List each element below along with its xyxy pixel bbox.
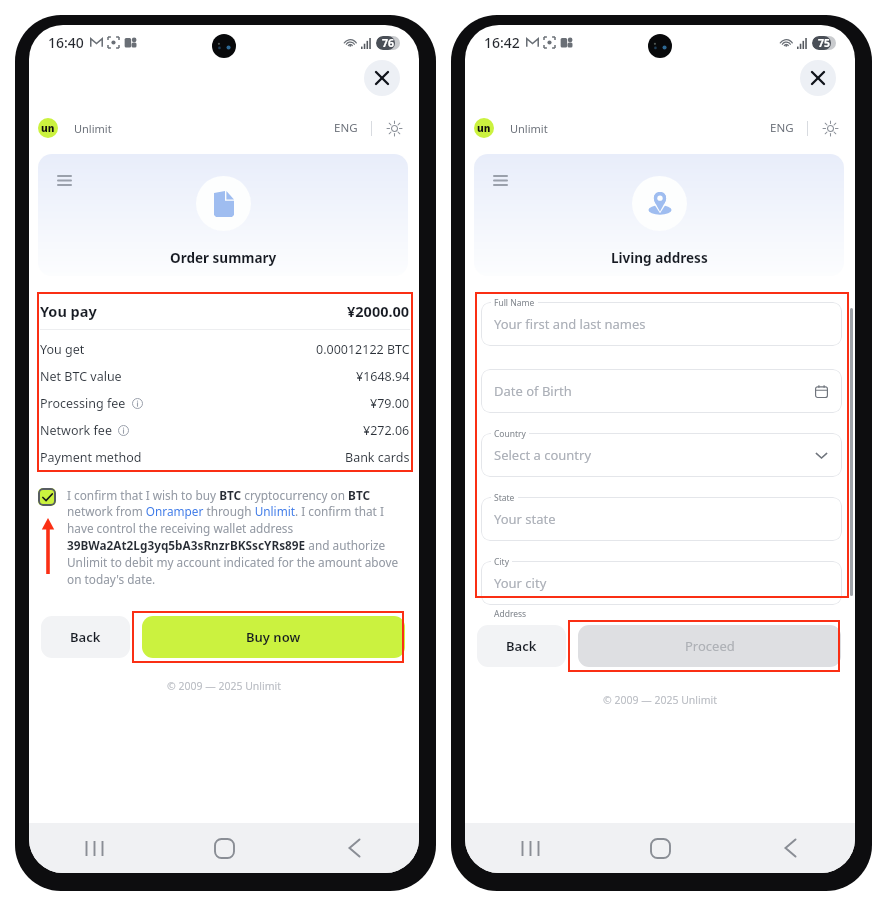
button[interactable]: Close <box>364 60 400 96</box>
staticText: un <box>477 121 491 135</box>
staticText: Back <box>506 637 537 655</box>
button[interactable]: Theme <box>819 117 841 139</box>
staticText: Select a country <box>494 446 592 464</box>
button[interactable]: Back <box>725 823 855 873</box>
staticText: Full Name <box>494 297 535 309</box>
staticText: Living address <box>611 249 708 267</box>
button[interactable]: Close <box>800 60 836 96</box>
staticText: 16:40 <box>48 33 84 52</box>
staticText: ENG <box>770 120 794 136</box>
staticText: Unlimit <box>510 121 548 136</box>
staticText: Unlimit <box>74 121 112 136</box>
staticText: Date of Birth <box>494 382 572 400</box>
button[interactable]: Back <box>477 625 566 667</box>
staticText: Back <box>70 628 101 646</box>
staticText: Address <box>494 608 527 620</box>
staticText: State <box>494 492 515 504</box>
staticText: I confirm that I wish to buy BTC cryptoc… <box>67 487 404 588</box>
staticText: un <box>41 121 55 135</box>
staticText: © 2009 — 2025 Unlimit <box>29 679 419 693</box>
staticText: 16:42 <box>484 33 520 52</box>
staticText: Net BTC value <box>40 368 122 385</box>
button[interactable]: Back <box>289 823 419 873</box>
button[interactable]: Buy now <box>142 616 405 658</box>
button[interactable]: Proceed <box>578 625 841 667</box>
staticText: Network fee <box>40 422 112 439</box>
button[interactable] <box>481 561 842 605</box>
staticText: Your state <box>494 510 556 528</box>
button[interactable] <box>481 497 842 541</box>
staticText: ENG <box>334 120 358 136</box>
button[interactable]: Recent apps <box>29 823 159 873</box>
staticText: 0.00012122 BTC <box>316 341 410 358</box>
staticText: Your first and last names <box>494 315 646 333</box>
button[interactable]: Back <box>41 616 130 658</box>
staticText: 76 <box>382 36 395 50</box>
staticText: City <box>494 556 509 568</box>
staticText: ¥79.00 <box>370 395 410 412</box>
button[interactable]: ENG <box>330 115 362 141</box>
staticText: Proceed <box>685 637 735 655</box>
staticText: Processing fee <box>40 395 126 412</box>
button[interactable]: Home <box>595 823 725 873</box>
staticText: Your city <box>494 574 547 592</box>
staticText: Buy now <box>246 628 301 646</box>
staticText: You get <box>40 341 85 358</box>
button[interactable] <box>481 369 842 413</box>
button[interactable] <box>481 433 842 477</box>
button[interactable]: Theme <box>383 117 405 139</box>
staticText: You pay <box>40 301 97 321</box>
staticText: Bank cards <box>345 449 410 466</box>
button[interactable]: Confirm purchase <box>38 488 56 506</box>
staticText: Country <box>494 428 526 440</box>
staticText: ¥272.06 <box>363 422 410 439</box>
staticText: Order summary <box>170 249 277 267</box>
button[interactable]: ENG <box>766 115 798 141</box>
button[interactable] <box>481 302 842 346</box>
button[interactable]: Home <box>159 823 289 873</box>
staticText: ¥1648.94 <box>356 368 410 385</box>
staticText: Payment method <box>40 449 142 466</box>
staticText: 75 <box>818 36 831 50</box>
staticText: © 2009 — 2025 Unlimit <box>465 693 855 707</box>
button[interactable]: Recent apps <box>465 823 595 873</box>
staticText: ¥2000.00 <box>347 301 410 321</box>
